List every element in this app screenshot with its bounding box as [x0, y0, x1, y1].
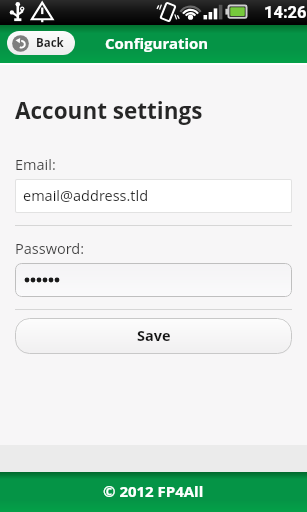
staticText: Email: — [15, 155, 56, 175]
button[interactable] — [15, 263, 292, 297]
staticText: Back — [36, 35, 64, 51]
staticText: 14:26 — [264, 3, 307, 22]
staticText: © 2012 FP4All — [103, 481, 204, 501]
staticText: email@address.tld — [23, 186, 149, 206]
button[interactable]: Save — [15, 318, 292, 354]
staticText: Save — [137, 326, 171, 346]
button[interactable]: email@address.tld — [16, 180, 291, 212]
staticText: Account settings — [15, 95, 203, 126]
staticText: Configuration — [105, 33, 209, 53]
button[interactable]: Back — [7, 31, 75, 55]
staticText: Password: — [15, 239, 85, 259]
